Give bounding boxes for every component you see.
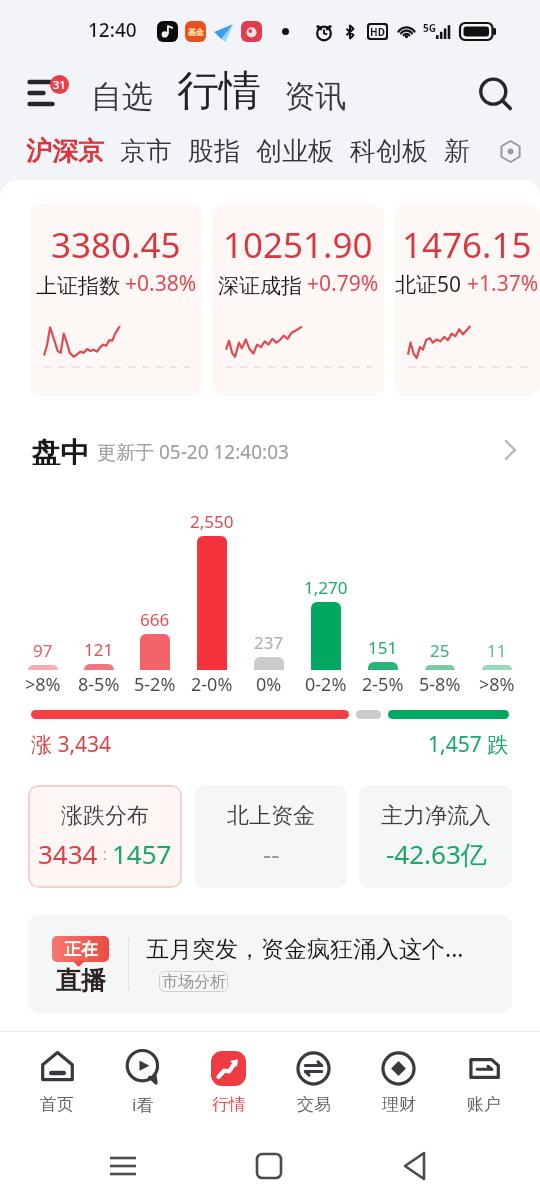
staticText: 市场分析: [162, 972, 226, 992]
staticText: 上证指数: [36, 273, 120, 299]
staticText: 5G: [423, 21, 436, 35]
staticText: 2,550: [190, 510, 234, 533]
staticText: 五月突发，资金疯狂涌入这个...: [146, 932, 464, 963]
staticText: 10251.90: [223, 221, 373, 269]
staticText: i看: [132, 1093, 154, 1116]
button[interactable]: 新: [438, 130, 476, 173]
button[interactable]: 创业板: [250, 130, 340, 173]
staticText: 北上资金: [227, 802, 315, 830]
button[interactable]: i看: [100, 1032, 186, 1131]
staticText: 8-5%: [78, 672, 120, 697]
button[interactable]: 10251.90: [212, 204, 384, 396]
staticText: 121: [84, 638, 114, 661]
staticText: 11: [487, 639, 507, 662]
button[interactable]: 自选: [87, 69, 157, 124]
button[interactable]: Back: [393, 1143, 439, 1189]
staticText: 0%: [256, 672, 282, 697]
staticText: 25: [430, 639, 450, 662]
staticText: +1.37%: [467, 269, 539, 298]
staticText: 31: [53, 77, 66, 92]
staticText: 12:40: [88, 17, 137, 43]
button[interactable]: Menu: [20, 72, 66, 118]
staticText: 1476.15: [402, 221, 532, 269]
staticText: 账户: [467, 1094, 501, 1115]
staticText: 涨 3,434: [31, 730, 112, 759]
staticText: 5-2%: [134, 672, 176, 697]
staticText: 5-8%: [419, 672, 461, 697]
staticText: 基金: [188, 27, 204, 37]
staticText: 3434: [38, 836, 98, 871]
staticText: -42.63亿: [386, 836, 487, 872]
button[interactable]: 盘中: [0, 435, 540, 465]
button[interactable]: Search: [473, 72, 519, 118]
staticText: --: [263, 836, 280, 871]
staticText: 交易: [297, 1094, 331, 1115]
staticText: 盘中: [31, 435, 89, 465]
staticText: +0.38%: [125, 269, 197, 298]
staticText: 涨跌分布: [61, 802, 149, 830]
button[interactable]: 沪深京: [20, 130, 110, 173]
staticText: 直播: [56, 965, 106, 996]
staticText: 151: [368, 636, 398, 659]
button[interactable]: 行情: [173, 65, 265, 118]
button[interactable]: 3380.45: [30, 204, 202, 396]
button[interactable]: 北上资金: [194, 785, 347, 888]
staticText: 0-2%: [305, 672, 347, 697]
staticText: 更新于 05-20 12:40:03: [97, 439, 289, 465]
button[interactable]: All markets: [493, 134, 527, 168]
staticText: 北证50: [395, 270, 462, 299]
staticText: 正在: [64, 939, 98, 960]
staticText: HD: [370, 25, 385, 38]
button[interactable]: 主力净流入: [359, 785, 512, 888]
button[interactable]: 账户: [441, 1032, 526, 1131]
button[interactable]: 科创板: [344, 130, 434, 173]
button[interactable]: 京市: [114, 130, 178, 173]
button[interactable]: 股指: [182, 130, 246, 173]
button[interactable]: 正在: [28, 914, 512, 1013]
button[interactable]: 资讯: [280, 69, 350, 124]
staticText: 主力净流入: [381, 802, 491, 830]
staticText: :: [98, 842, 112, 865]
button[interactable]: 1476.15: [394, 204, 540, 396]
staticText: 行情: [212, 1094, 246, 1115]
staticText: 3380.45: [51, 221, 181, 269]
staticText: +0.79%: [307, 269, 379, 298]
button[interactable]: 涨跌分布: [28, 785, 182, 888]
staticText: 1457: [112, 836, 172, 871]
staticText: >8%: [25, 672, 61, 697]
button[interactable]: 交易: [271, 1032, 356, 1131]
staticText: 2-0%: [191, 672, 233, 697]
staticText: 1,457 跌: [428, 730, 509, 759]
staticText: 1,270: [304, 576, 348, 599]
staticText: >8%: [479, 672, 515, 697]
staticText: 理财: [382, 1094, 416, 1115]
button[interactable]: Home: [246, 1143, 292, 1189]
staticText: 237: [254, 631, 284, 654]
staticText: 首页: [40, 1094, 74, 1115]
button[interactable]: 首页: [14, 1032, 100, 1131]
button[interactable]: 行情: [186, 1032, 271, 1131]
staticText: 97: [33, 639, 53, 662]
button[interactable]: 理财: [356, 1032, 441, 1131]
button[interactable]: Recents: [100, 1143, 146, 1189]
staticText: 2-5%: [362, 672, 404, 697]
staticText: 666: [140, 608, 170, 631]
staticText: 深证成指: [218, 273, 302, 299]
